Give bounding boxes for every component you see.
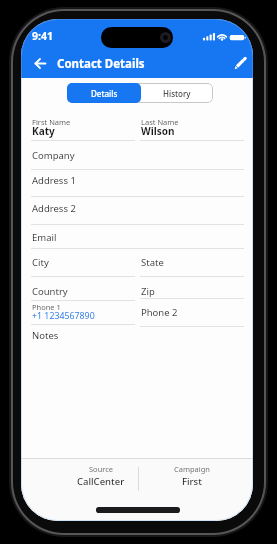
- staticText: Contact Details: [57, 56, 145, 72]
- button[interactable]: [30, 52, 52, 74]
- staticText: CallCenter: [77, 475, 125, 488]
- staticText: 9:41: [32, 29, 53, 43]
- button[interactable]: Details: [67, 83, 141, 103]
- staticText: Details: [91, 88, 118, 99]
- staticText: City: [32, 256, 49, 269]
- staticText: Phone 2: [141, 306, 178, 319]
- staticText: +1 1234567890: [32, 310, 95, 322]
- staticText: Country: [32, 285, 68, 298]
- staticText: State: [141, 256, 164, 269]
- staticText: Last Name: [141, 117, 179, 127]
- staticText: First Name: [32, 117, 71, 127]
- staticText: Address 1: [32, 174, 76, 187]
- button[interactable]: +1 1234567890: [32, 310, 95, 322]
- staticText: Zip: [141, 285, 155, 298]
- staticText: History: [163, 88, 191, 99]
- staticText: Source: [89, 464, 114, 474]
- staticText: First: [182, 475, 202, 488]
- button[interactable]: [31, 459, 138, 519]
- button[interactable]: [139, 459, 243, 519]
- staticText: Notes: [32, 329, 59, 342]
- staticText: Campaign: [174, 464, 210, 474]
- button[interactable]: [228, 53, 250, 75]
- button[interactable]: History: [141, 83, 213, 103]
- staticText: Wilson: [141, 124, 175, 138]
- staticText: Katy: [32, 124, 55, 138]
- staticText: Email: [32, 231, 57, 244]
- staticText: Address 2: [32, 202, 76, 215]
- staticText: Company: [32, 149, 75, 162]
- staticText: Phone 1: [32, 302, 61, 312]
